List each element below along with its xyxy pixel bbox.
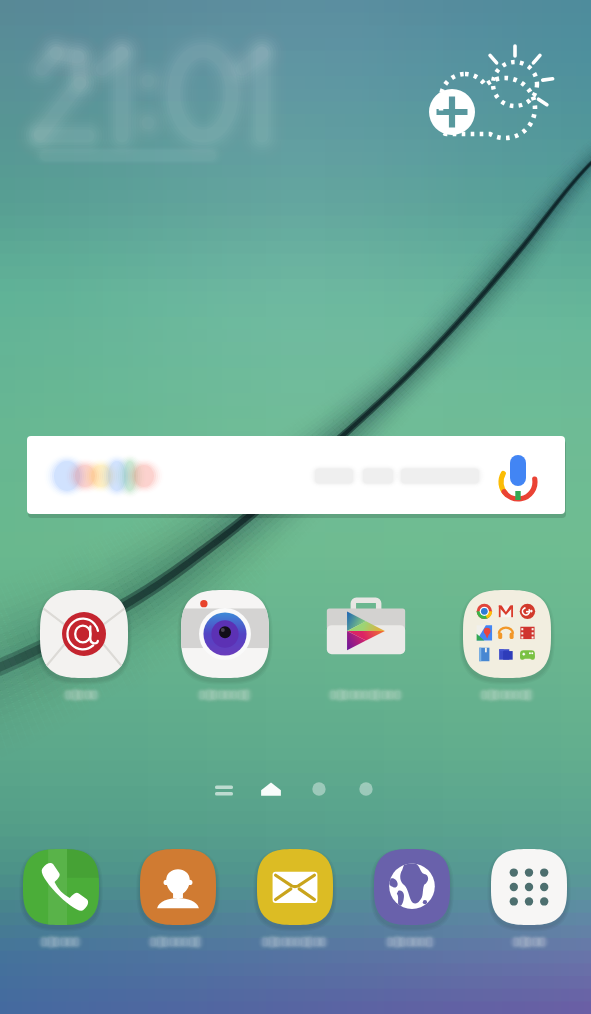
button[interactable]: Google bbox=[451, 590, 563, 708]
button[interactable]: Page 4 bbox=[343, 766, 389, 812]
button[interactable]: Clock widget, 21:01 bbox=[28, 36, 292, 176]
button[interactable]: Apps bbox=[479, 849, 579, 955]
button[interactable]: Add weather widget bbox=[415, 40, 577, 152]
button[interactable]: Internet bbox=[362, 849, 462, 955]
button[interactable]: Phone bbox=[11, 849, 111, 955]
button[interactable]: Camera bbox=[169, 590, 281, 708]
button[interactable]: Contacts bbox=[128, 849, 228, 955]
button[interactable]: Briefing page bbox=[201, 766, 247, 812]
button[interactable]: Messages bbox=[245, 849, 345, 955]
button[interactable]: Google search bbox=[27, 436, 565, 514]
button[interactable]: Home page bbox=[248, 766, 294, 812]
button[interactable]: Page 3 bbox=[296, 766, 342, 812]
button[interactable]: Play Store bbox=[310, 590, 422, 708]
button[interactable]: Email bbox=[28, 590, 140, 708]
